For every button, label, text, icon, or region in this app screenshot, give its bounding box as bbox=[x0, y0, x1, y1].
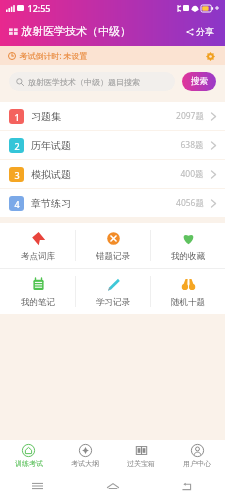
staticText: 过关宝箱 bbox=[127, 459, 155, 468]
button[interactable]: 3 bbox=[0, 160, 225, 188]
staticText: 用户中心 bbox=[183, 459, 211, 468]
staticText: 搜索 bbox=[191, 76, 208, 87]
staticText: 分享 bbox=[196, 26, 214, 37]
button[interactable]: 错题记录 bbox=[76, 223, 150, 268]
staticText: 考试倒计时: 未设置 bbox=[19, 50, 88, 61]
button[interactable]: 考点词库 bbox=[0, 223, 75, 268]
staticText: 1 bbox=[14, 111, 20, 123]
staticText: 历年试题 bbox=[31, 139, 71, 152]
staticText: 随机十题 bbox=[171, 297, 205, 308]
staticText: 2 bbox=[14, 140, 20, 152]
staticText: 我的笔记 bbox=[21, 297, 55, 308]
staticText: 考点词库 bbox=[21, 251, 55, 262]
button[interactable]: 设置 bbox=[203, 49, 217, 63]
staticText: 4 bbox=[14, 198, 20, 210]
staticText: 3 bbox=[14, 169, 20, 181]
staticText: 12:55 bbox=[27, 2, 51, 14]
button[interactable]: 考试大纲 bbox=[57, 440, 113, 472]
button[interactable]: 随机十题 bbox=[151, 269, 225, 314]
staticText: 学习记录 bbox=[96, 297, 130, 308]
button[interactable]: 4 bbox=[0, 189, 225, 217]
button[interactable]: 1 bbox=[0, 102, 225, 130]
button[interactable]: 我的笔记 bbox=[0, 269, 75, 314]
staticText: 模拟试题 bbox=[31, 168, 71, 181]
button[interactable]: Home bbox=[75, 472, 150, 500]
staticText: 400题 bbox=[180, 168, 204, 180]
button[interactable]: 考试倒计时: 未设置 bbox=[0, 46, 225, 65]
button[interactable]: 用户中心 bbox=[169, 440, 225, 472]
button[interactable]: Back bbox=[150, 472, 225, 500]
button[interactable]: 学习记录 bbox=[76, 269, 150, 314]
button[interactable]: 2 bbox=[0, 131, 225, 159]
button[interactable]: 搜索 bbox=[182, 72, 216, 91]
staticText: 训练考试 bbox=[15, 459, 43, 468]
staticText: 错题记录 bbox=[96, 251, 130, 262]
button[interactable]: 过关宝箱 bbox=[113, 440, 169, 472]
button[interactable]: 我的收藏 bbox=[151, 223, 225, 268]
button[interactable]: Recent apps bbox=[0, 472, 75, 500]
staticText: 638题 bbox=[180, 139, 204, 151]
staticText: 放射医学技术（中级） bbox=[21, 24, 131, 38]
button[interactable]: 放射医学技术（中级）题目搜索 bbox=[9, 72, 175, 91]
button[interactable]: 分享 bbox=[184, 24, 216, 39]
staticText: 考试大纲 bbox=[71, 459, 99, 468]
staticText: 我的收藏 bbox=[171, 251, 205, 262]
staticText: 放射医学技术（中级）题目搜索 bbox=[28, 77, 140, 87]
staticText: 2097题 bbox=[176, 110, 204, 122]
staticText: 习题集 bbox=[31, 110, 61, 123]
staticText: 章节练习 bbox=[31, 197, 71, 210]
button[interactable]: 训练考试 bbox=[0, 440, 57, 472]
staticText: 4056题 bbox=[176, 197, 204, 209]
